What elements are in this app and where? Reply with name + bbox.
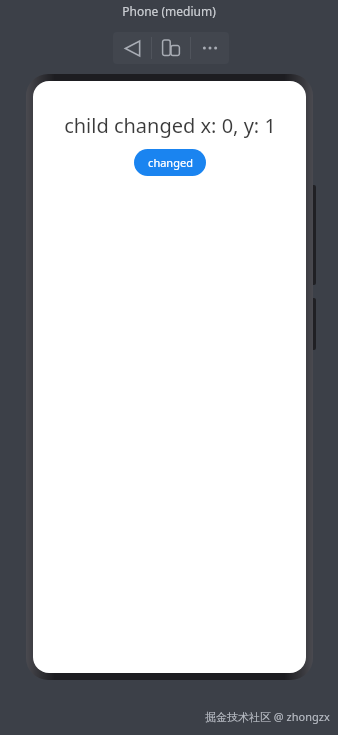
- button[interactable]: Run preview: [113, 32, 151, 64]
- button[interactable]: Change device: [152, 32, 190, 64]
- staticText: child changed x: 0, y: 1: [64, 112, 276, 139]
- staticText: Phone (medium): [122, 3, 216, 19]
- button[interactable]: changed: [134, 149, 206, 176]
- staticText: 掘金技术社区 @ zhongzx: [205, 709, 330, 724]
- staticText: changed: [148, 155, 193, 170]
- button[interactable]: More options: [191, 32, 229, 64]
